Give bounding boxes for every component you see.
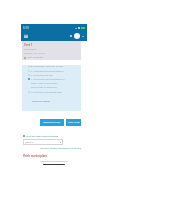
staticText: Test 1 [24, 43, 33, 47]
staticText: NEXT PAGE [68, 121, 80, 124]
staticText: Started Jan 1 [24, 48, 38, 51]
staticText: Time remaining [27, 56, 44, 59]
staticText: a. a life with one finding filled in [31, 70, 64, 73]
staticText: alla of order of being allo [31, 86, 57, 89]
button[interactable]: PREVIOUS PAGE [40, 119, 64, 126]
staticText: Phish marketplace [23, 154, 48, 158]
staticText: when r does a wet and go [31, 82, 58, 85]
staticText: d. a life after one finding right [31, 91, 62, 94]
staticText: Not app allows it showing (C 666789) [40, 146, 82, 149]
staticText: Click me quiz make showing! [26, 134, 59, 137]
staticText: Jump to... [25, 141, 36, 144]
button[interactable]: Clear my choice [32, 99, 50, 102]
staticText: Attempt 1 of 1 to be [24, 52, 45, 55]
button[interactable]: Jump to [23, 139, 63, 145]
button[interactable]: Menu [24, 34, 28, 38]
staticText: b. To fix bug that falls [31, 74, 53, 77]
button[interactable]: Account [74, 33, 80, 39]
staticText: c. both these ones thing within a [31, 78, 65, 81]
staticText: c. stsimey.prologmods.co [21, 159, 87, 162]
staticText: Clear my choice [32, 99, 50, 102]
staticText: 5:15 [23, 26, 29, 30]
staticText: This chang with 100% for 5 thing [28, 65, 64, 68]
button[interactable]: NEXT PAGE [66, 119, 81, 126]
staticText: PREVIOUS PAGE [43, 121, 61, 124]
